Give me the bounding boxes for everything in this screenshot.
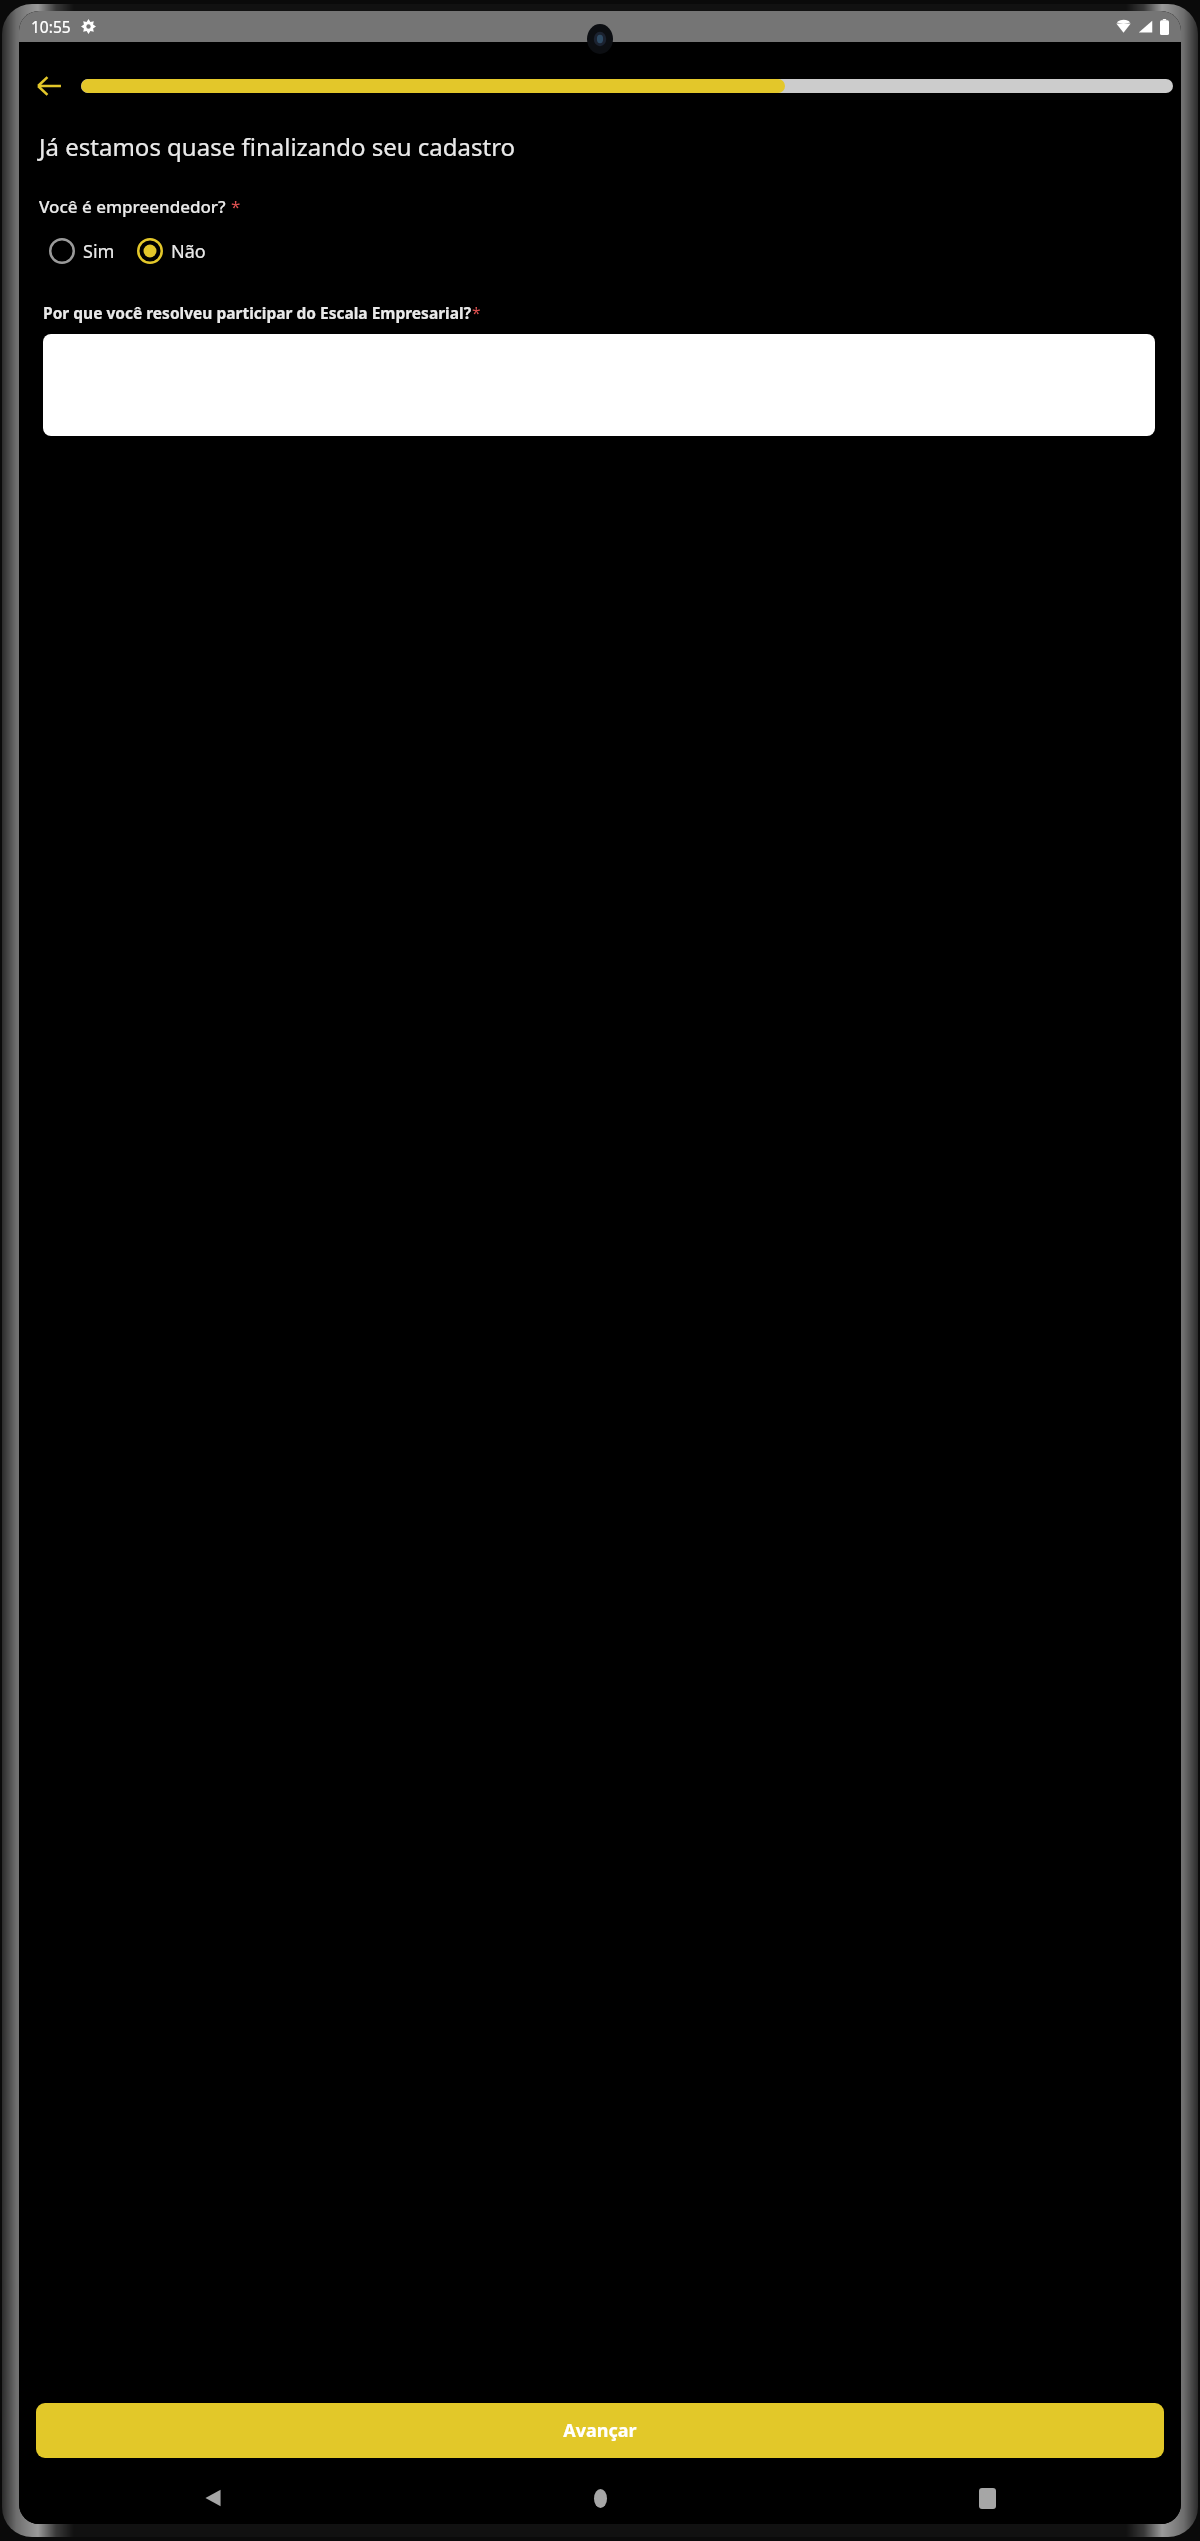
button[interactable]: Sim (41, 230, 115, 272)
staticText: * (472, 302, 481, 323)
button[interactable]: Avançar (36, 2403, 1164, 2458)
staticText: Avançar (563, 2418, 637, 2443)
button[interactable]: Não (129, 230, 206, 272)
staticText: 10:55 (31, 16, 71, 37)
button[interactable]: Back (19, 2472, 407, 2524)
button[interactable]: Recents (794, 2472, 1181, 2524)
button[interactable] (43, 334, 1155, 436)
staticText: Sim (83, 239, 115, 264)
staticText: Não (171, 239, 206, 264)
staticText: Já estamos quase finalizando seu cadastr… (39, 130, 1141, 163)
staticText: Por que você resolveu participar do Esca… (43, 302, 472, 323)
button[interactable]: Voltar (27, 64, 71, 108)
button[interactable]: Home (407, 2472, 794, 2524)
staticText: Você é empreendedor? (39, 195, 226, 218)
staticText: * (231, 195, 241, 218)
